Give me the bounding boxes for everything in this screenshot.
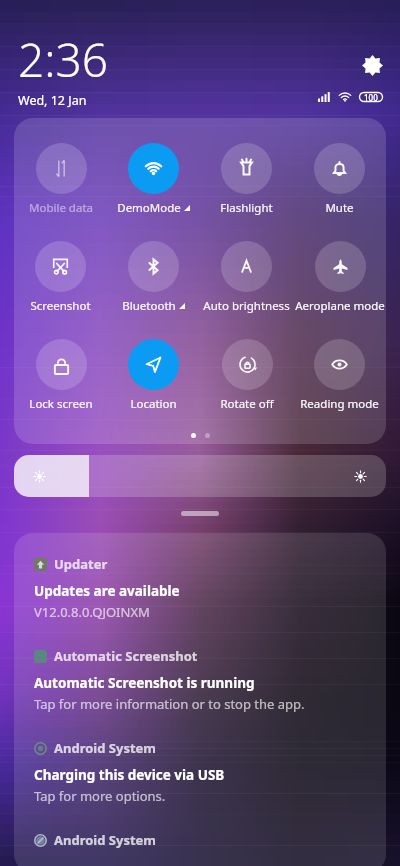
staticText: USB debugging connected bbox=[34, 858, 211, 859]
button[interactable]: Lock screen bbox=[29, 339, 93, 412]
staticText: Mute bbox=[325, 200, 354, 216]
button[interactable]: Auto brightness bbox=[203, 241, 290, 314]
staticText: Rotate off bbox=[220, 396, 274, 412]
button[interactable]: Android System bbox=[14, 727, 386, 819]
button[interactable]: Mobile data bbox=[29, 143, 93, 216]
staticText: Auto brightness bbox=[203, 298, 290, 314]
button[interactable]: Aeroplane mode bbox=[295, 241, 385, 314]
button[interactable]: Rotate off bbox=[220, 339, 274, 412]
staticText: Wed, 12 Jan bbox=[18, 92, 87, 109]
button[interactable]: DemoMode bbox=[117, 143, 190, 216]
staticText: 2:36 bbox=[18, 28, 109, 91]
staticText: Location bbox=[130, 396, 177, 412]
staticText: Reading mode bbox=[300, 396, 379, 412]
staticText: 100 bbox=[364, 92, 378, 102]
staticText: Updater bbox=[54, 555, 108, 573]
button[interactable]: Automatic Screenshot bbox=[14, 635, 386, 727]
button[interactable]: Bluetooth bbox=[122, 241, 185, 314]
button[interactable]: Flashlight bbox=[220, 143, 273, 216]
staticText: Aeroplane mode bbox=[295, 298, 385, 314]
staticText: Updates are available bbox=[34, 582, 180, 600]
staticText: Automatic Screenshot is running bbox=[34, 674, 255, 692]
staticText: Android System bbox=[54, 831, 157, 849]
staticText: Flashlight bbox=[220, 200, 273, 216]
staticText: DemoMode bbox=[117, 200, 181, 216]
button[interactable]: Updater bbox=[14, 543, 386, 635]
button[interactable]: Android System bbox=[14, 819, 386, 866]
button[interactable]: Reading mode bbox=[300, 339, 379, 412]
button[interactable]: Settings bbox=[360, 53, 384, 77]
button[interactable]: Mute bbox=[314, 143, 365, 216]
staticText: Charging this device via USB bbox=[34, 766, 225, 784]
staticText: Tap for more options. bbox=[34, 787, 166, 805]
staticText: Bluetooth bbox=[122, 298, 176, 314]
button[interactable]: Screenshot bbox=[30, 241, 91, 314]
staticText: Mobile data bbox=[29, 200, 93, 216]
staticText: Lock screen bbox=[29, 396, 93, 412]
button[interactable]: Brightness bbox=[14, 455, 386, 497]
staticText: Android System bbox=[54, 739, 157, 757]
staticText: Screenshot bbox=[30, 298, 91, 314]
staticText: V12.0.8.0.QJOINXM bbox=[34, 603, 150, 621]
staticText: Automatic Screenshot bbox=[54, 647, 198, 665]
staticText: Tap for more information or to stop the … bbox=[34, 695, 305, 713]
button[interactable]: Location bbox=[128, 339, 179, 412]
